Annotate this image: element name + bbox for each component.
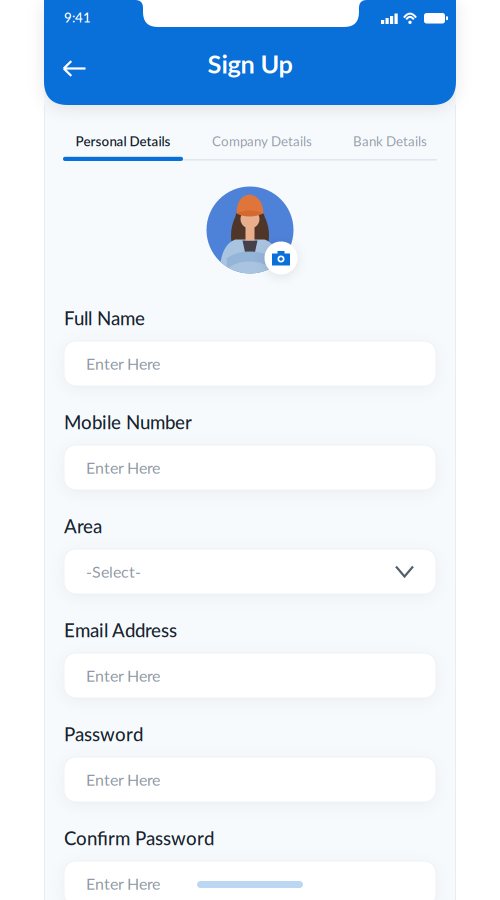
staticText: Area: [64, 515, 102, 537]
button[interactable]: -Select-: [64, 549, 436, 594]
button[interactable]: Enter Here: [64, 653, 436, 698]
staticText: Mobile Number: [64, 411, 192, 433]
staticText: Confirm Password: [64, 827, 214, 849]
staticText: Email Address: [64, 619, 177, 641]
button[interactable]: Company Details: [202, 127, 322, 155]
staticText: Enter Here: [86, 770, 160, 789]
staticText: -Select-: [86, 562, 141, 581]
staticText: Enter Here: [86, 354, 160, 373]
staticText: Enter Here: [86, 666, 160, 685]
button[interactable]: Enter Here: [64, 341, 436, 386]
staticText: Enter Here: [86, 458, 160, 477]
staticText: Company Details: [212, 133, 312, 149]
button[interactable]: Enter Here: [64, 757, 436, 802]
staticText: Bank Details: [353, 133, 427, 149]
staticText: Sign Up: [207, 49, 292, 79]
button[interactable]: Personal Details: [63, 127, 183, 155]
staticText: Enter Here: [86, 874, 160, 893]
button[interactable]: Bank Details: [330, 127, 450, 155]
staticText: 9:41: [64, 9, 91, 25]
button[interactable]: [62, 59, 86, 77]
staticText: Full Name: [64, 307, 145, 329]
staticText: Password: [64, 723, 143, 745]
button[interactable]: Enter Here: [64, 861, 436, 900]
button[interactable]: Enter Here: [64, 445, 436, 490]
button[interactable]: [264, 241, 297, 274]
staticText: Personal Details: [75, 133, 170, 149]
